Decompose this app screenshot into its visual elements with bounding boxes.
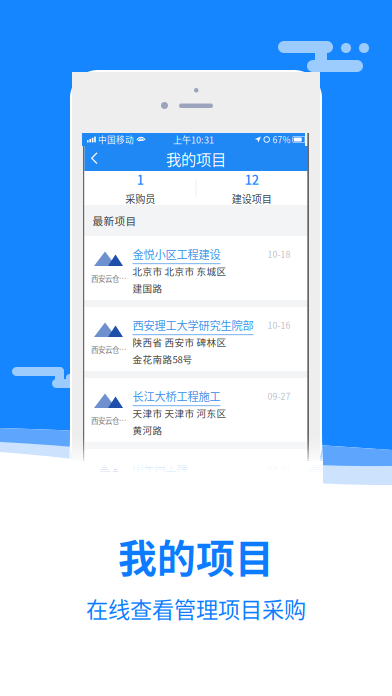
staticText: 建国路 [132, 281, 162, 295]
staticText: 上午10:31 [173, 133, 214, 146]
button[interactable]: 1 [84, 171, 196, 205]
staticText: 我的项目 [118, 528, 274, 584]
staticText: 在线查看管理项目采购 [86, 592, 306, 624]
button[interactable]: 12 [196, 171, 307, 205]
button[interactable]: 返回 [84, 146, 104, 171]
button[interactable]: 西安云仓… [84, 378, 307, 442]
button[interactable]: 西安云仓… [84, 449, 307, 513]
staticText: 长江大桥工程施工 [132, 388, 220, 404]
staticText: 陕西省 西安市 碑林区 [132, 335, 226, 349]
staticText: 我的项目 [166, 147, 226, 170]
staticText: 09-27 [267, 389, 290, 402]
staticText: 采购员 [125, 191, 155, 206]
staticText: 金花南路58号 [132, 352, 192, 366]
staticText: 10-16 [267, 318, 290, 331]
staticText: 中车园工程 [132, 459, 187, 475]
staticText: 西安理工大学研究生院部 [132, 317, 253, 333]
staticText: 67% [272, 133, 290, 146]
staticText: 北京市 北京市 东城区 [132, 264, 226, 278]
button[interactable]: 西安云仓… [84, 236, 307, 300]
staticText: 中国移动 [98, 133, 134, 146]
staticText: 金悦小区工程建设 [132, 246, 220, 262]
staticText: 西安云仓… [91, 273, 126, 284]
staticText: 西安云仓… [91, 344, 126, 355]
staticText: 建设项目 [232, 191, 272, 206]
staticText: 最新项目 [92, 213, 136, 228]
staticText: 西安云仓… [91, 415, 126, 426]
staticText: 黄河路 [132, 423, 162, 437]
staticText: 1 [137, 170, 144, 188]
staticText: 天津市 天津市 河东区 [132, 406, 226, 420]
staticText: 12 [245, 170, 259, 188]
button[interactable]: 西安云仓… [84, 307, 307, 371]
staticText: 10-18 [267, 247, 290, 260]
